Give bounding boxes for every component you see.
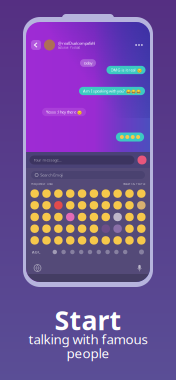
- staticText: Yesss :) hey there 😊: [46, 109, 82, 115]
- staticText: people: [66, 344, 109, 362]
- staticText: Search Emoji: [40, 172, 63, 178]
- staticText: Your message...: [33, 157, 61, 163]
- staticText: talking with famous: [28, 330, 147, 348]
- button[interactable]: Dictate: [137, 264, 142, 271]
- staticText: Am I speaking with you? 😀😀😀: [83, 88, 141, 94]
- staticText: OMG is it real 😊: [110, 67, 141, 73]
- staticText: Start: [54, 302, 121, 338]
- button[interactable]: Delete: [139, 249, 144, 254]
- staticText: FREQUENTLY USED: [31, 182, 53, 186]
- button[interactable]: Switch language: [34, 264, 41, 271]
- button[interactable]: Send: [137, 155, 146, 164]
- button[interactable]: Back: [31, 40, 41, 50]
- staticText: today: [83, 60, 92, 66]
- staticText: ABC: [32, 249, 41, 255]
- button[interactable]: ABC: [32, 249, 41, 255]
- staticText: Exclusive Podcast: [58, 46, 80, 49]
- button[interactable]: More options: [133, 40, 145, 50]
- staticText: @realDualcompafahl: [58, 41, 95, 46]
- staticText: SMILEYS & PEOPLE: [123, 182, 145, 186]
